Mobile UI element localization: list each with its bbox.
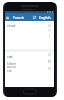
staticText: chat [7,23,16,28]
button[interactable]: Favourite [47,52,52,57]
staticText: cat [7,68,12,72]
button[interactable]: pussy [7,64,31,68]
button[interactable]: Listen [47,28,52,33]
button[interactable]: Menu [5,15,10,20]
staticText: French [13,15,25,20]
button[interactable]: kitten [7,61,31,65]
button[interactable]: More options [47,33,52,38]
button[interactable]: cat [7,68,31,72]
button[interactable]: English [37,14,53,20]
staticText: pussy [7,64,17,68]
button[interactable]: French [11,14,27,20]
button[interactable]: chat [7,23,35,28]
button[interactable]: Swap languages [32,15,37,20]
staticText: cat [7,54,13,59]
button[interactable]: Copy [47,59,52,64]
staticText: kitten [7,61,17,65]
staticText: SAMSUNG [22,7,35,10]
staticText: English [39,15,51,20]
button[interactable]: Clear [47,23,52,28]
button[interactable]: Share [47,66,52,71]
button[interactable]: cat [7,54,35,59]
